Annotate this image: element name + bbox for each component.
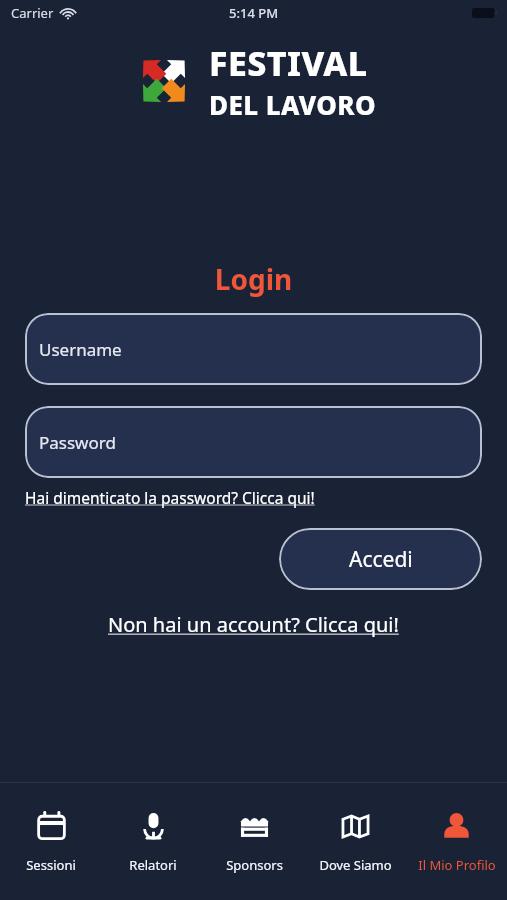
staticText: DEL LAVORO xyxy=(209,87,376,122)
button[interactable]: Accedi xyxy=(279,528,482,590)
button[interactable]: Sponsors xyxy=(204,783,305,900)
staticText: Relatori xyxy=(129,856,177,874)
staticText: Sessioni xyxy=(26,856,76,874)
staticText: FESTIVAL xyxy=(209,40,368,86)
button[interactable]: Username xyxy=(25,313,482,385)
staticText: Login xyxy=(25,260,482,298)
button[interactable]: Dove Siamo xyxy=(305,783,406,900)
staticText: Carrier xyxy=(11,4,54,22)
button[interactable]: Il Mio Profilo xyxy=(406,783,507,900)
staticText: Il Mio Profilo xyxy=(418,856,496,874)
staticText: Username xyxy=(39,338,122,361)
button[interactable]: Relatori xyxy=(102,783,204,900)
staticText: 5:14 PM xyxy=(229,4,279,22)
staticText: Password xyxy=(39,431,116,454)
button[interactable]: Hai dimenticato la password? Clicca qui! xyxy=(25,487,315,508)
button[interactable]: Sessioni xyxy=(0,783,102,900)
staticText: Sponsors xyxy=(226,856,283,874)
button[interactable]: Non hai un account? Clicca qui! xyxy=(108,611,399,638)
staticText: Dove Siamo xyxy=(319,856,392,874)
button[interactable]: Password xyxy=(25,406,482,478)
staticText: Accedi xyxy=(349,545,413,574)
